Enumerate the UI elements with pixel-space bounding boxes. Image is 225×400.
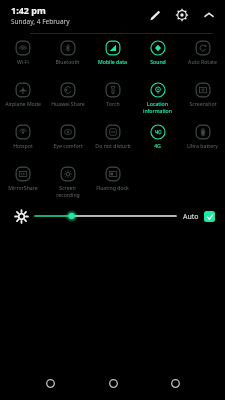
button[interactable]: Screen [45, 163, 90, 205]
button[interactable]: Brightness [12, 207, 30, 225]
button[interactable]: Sound [135, 37, 180, 79]
staticText: 1:42 pm [11, 4, 46, 16]
button[interactable]: Floating dock [90, 163, 135, 205]
staticText: information [143, 107, 172, 114]
button[interactable]: Settings [173, 6, 191, 24]
staticText: Torch [106, 100, 120, 107]
button[interactable]: Home [101, 371, 125, 395]
button[interactable]: Wi-Fi [0, 37, 45, 79]
staticText: Do not disturb [95, 142, 131, 149]
button[interactable]: Collapse [200, 6, 218, 24]
button[interactable]: Mobile data [90, 37, 135, 79]
staticText: Auto Rotate [188, 58, 217, 65]
staticText: Huawei Share [51, 100, 85, 107]
staticText: Auto [183, 212, 199, 222]
staticText: Sunday, 4 February [11, 17, 70, 26]
button[interactable]: Bluetooth [45, 37, 90, 79]
button[interactable]: Huawei Share [45, 79, 90, 121]
button[interactable]: Eye comfort [45, 121, 90, 163]
staticText: Bluetooth [55, 58, 80, 65]
staticText: Floating dock [96, 184, 129, 191]
button[interactable]: MirrorShare [0, 163, 45, 205]
staticText: Ultra battery [187, 142, 218, 149]
button[interactable]: Edit [146, 6, 164, 24]
staticText: Screen [59, 184, 76, 191]
staticText: 4G [154, 142, 161, 149]
staticText: Sound [150, 58, 166, 65]
button[interactable]: Ultra battery [180, 121, 225, 163]
button[interactable]: 4G [135, 121, 180, 163]
button[interactable]: Back [38, 371, 62, 395]
button[interactable]: Auto Rotate [180, 37, 225, 79]
staticText: recording [56, 191, 80, 198]
button[interactable]: Auto [183, 211, 215, 222]
staticText: Mobile data [98, 58, 127, 65]
staticText: MirrorShare [8, 184, 38, 191]
button[interactable]: Location [135, 79, 180, 121]
staticText: Eye comfort [53, 142, 83, 149]
button[interactable]: Hotspot [0, 121, 45, 163]
staticText: Location [147, 100, 168, 107]
button[interactable]: Do not disturb [90, 121, 135, 163]
button[interactable]: Torch [90, 79, 135, 121]
staticText: Screenshot [189, 100, 217, 107]
button[interactable]: Airplane Mode [0, 79, 45, 121]
staticText: Wi-Fi [17, 58, 29, 65]
button[interactable] [35, 207, 176, 225]
staticText: Airplane Mode [5, 100, 41, 107]
staticText: Hotspot [13, 142, 33, 149]
button[interactable]: Recents [163, 371, 187, 395]
button[interactable]: Screenshot [180, 79, 225, 121]
